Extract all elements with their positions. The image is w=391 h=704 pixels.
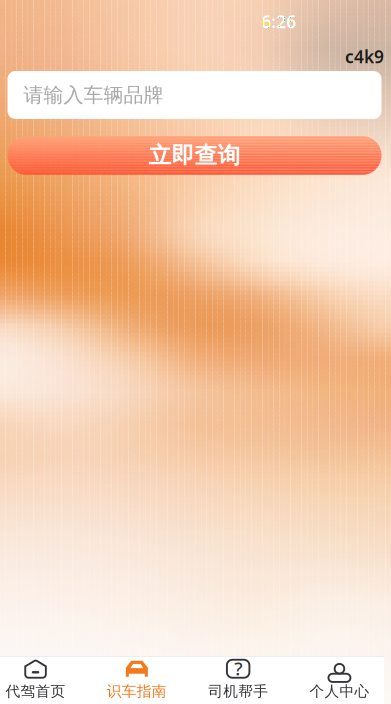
staticText: ? [234, 656, 242, 681]
button[interactable]: 代驾首页 [0, 656, 86, 704]
button[interactable]: 立即查询 [7, 136, 381, 175]
button[interactable]: 请输入车辆品牌 [7, 71, 381, 119]
staticText: 个人中心 [309, 682, 369, 700]
button[interactable]: 识车指南 [86, 656, 187, 704]
staticText: 代驾首页 [6, 682, 66, 700]
staticText: c4k9 [345, 45, 384, 68]
staticText: 立即查询 [148, 142, 240, 169]
button[interactable]: ? [187, 656, 289, 704]
staticText: 识车指南 [107, 682, 167, 700]
staticText: 6:26 [261, 10, 296, 33]
staticText: 请输入车辆品牌 [23, 83, 163, 107]
button[interactable]: 个人中心 [289, 656, 390, 704]
staticText: 司机帮手 [208, 682, 268, 700]
